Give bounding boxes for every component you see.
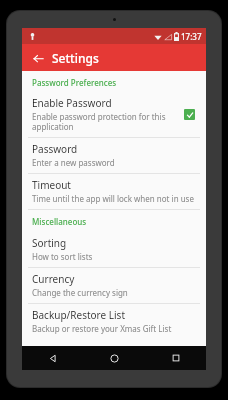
staticText: Currency: [32, 272, 75, 286]
button[interactable]: Sorting: [22, 232, 206, 267]
staticText: Password Preferences: [32, 77, 117, 88]
button[interactable]: Back: [22, 346, 84, 370]
button[interactable]: Enable Password: [22, 93, 206, 137]
staticText: Backup or restore your Xmas Gift List: [32, 323, 172, 334]
button[interactable]: Enable Password checkbox, checked: [180, 105, 198, 123]
button[interactable]: Recent apps: [145, 346, 206, 370]
staticText: Change the currency sign: [32, 287, 128, 298]
staticText: Enable password protection for this appl…: [32, 111, 174, 132]
button[interactable]: Backup/Restore List: [22, 304, 206, 339]
staticText: How to sort lists: [32, 251, 93, 262]
button[interactable]: Timeout: [22, 174, 206, 209]
staticText: Enable Password: [32, 96, 112, 110]
staticText: Enter a new password: [32, 157, 115, 168]
staticText: Time until the app will lock when not in…: [32, 193, 194, 204]
staticText: 17:37: [181, 31, 202, 42]
staticText: Sorting: [32, 236, 67, 250]
button[interactable]: Password: [22, 138, 206, 173]
staticText: Password: [32, 142, 78, 156]
button[interactable]: Home: [84, 346, 145, 370]
staticText: Miscellaneous: [32, 216, 87, 227]
staticText: Settings: [52, 50, 99, 66]
button[interactable]: Navigate up: [28, 48, 48, 68]
button[interactable]: Currency: [22, 268, 206, 303]
staticText: Backup/Restore List: [32, 308, 125, 322]
staticText: Timeout: [32, 178, 71, 192]
